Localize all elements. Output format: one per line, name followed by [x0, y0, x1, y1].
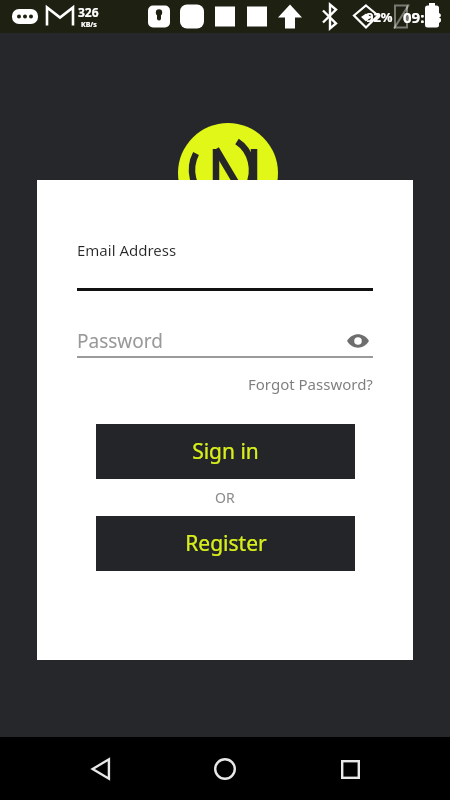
- staticText: Register: [185, 529, 267, 558]
- staticText: OR: [215, 488, 235, 507]
- staticText: Password: [77, 328, 163, 354]
- button[interactable]: Home: [201, 745, 249, 793]
- button[interactable]: Password: [77, 326, 373, 356]
- button[interactable]: Forgot Password?: [248, 374, 373, 394]
- button[interactable]: Register: [96, 516, 355, 571]
- staticText: Forgot Password?: [248, 374, 373, 394]
- staticText: 92%: [366, 8, 393, 26]
- staticText: Sign in: [192, 437, 259, 466]
- staticText: KB/s: [81, 20, 97, 30]
- button[interactable]: Recents: [326, 745, 374, 793]
- staticText: 326: [78, 4, 99, 20]
- staticText: 09:33: [403, 7, 442, 27]
- button[interactable]: Sign in: [96, 424, 355, 479]
- button[interactable]: Email Address: [77, 240, 373, 291]
- button[interactable]: Show password: [343, 326, 373, 356]
- button[interactable]: Back: [77, 745, 125, 793]
- staticText: Email Address: [77, 240, 177, 260]
